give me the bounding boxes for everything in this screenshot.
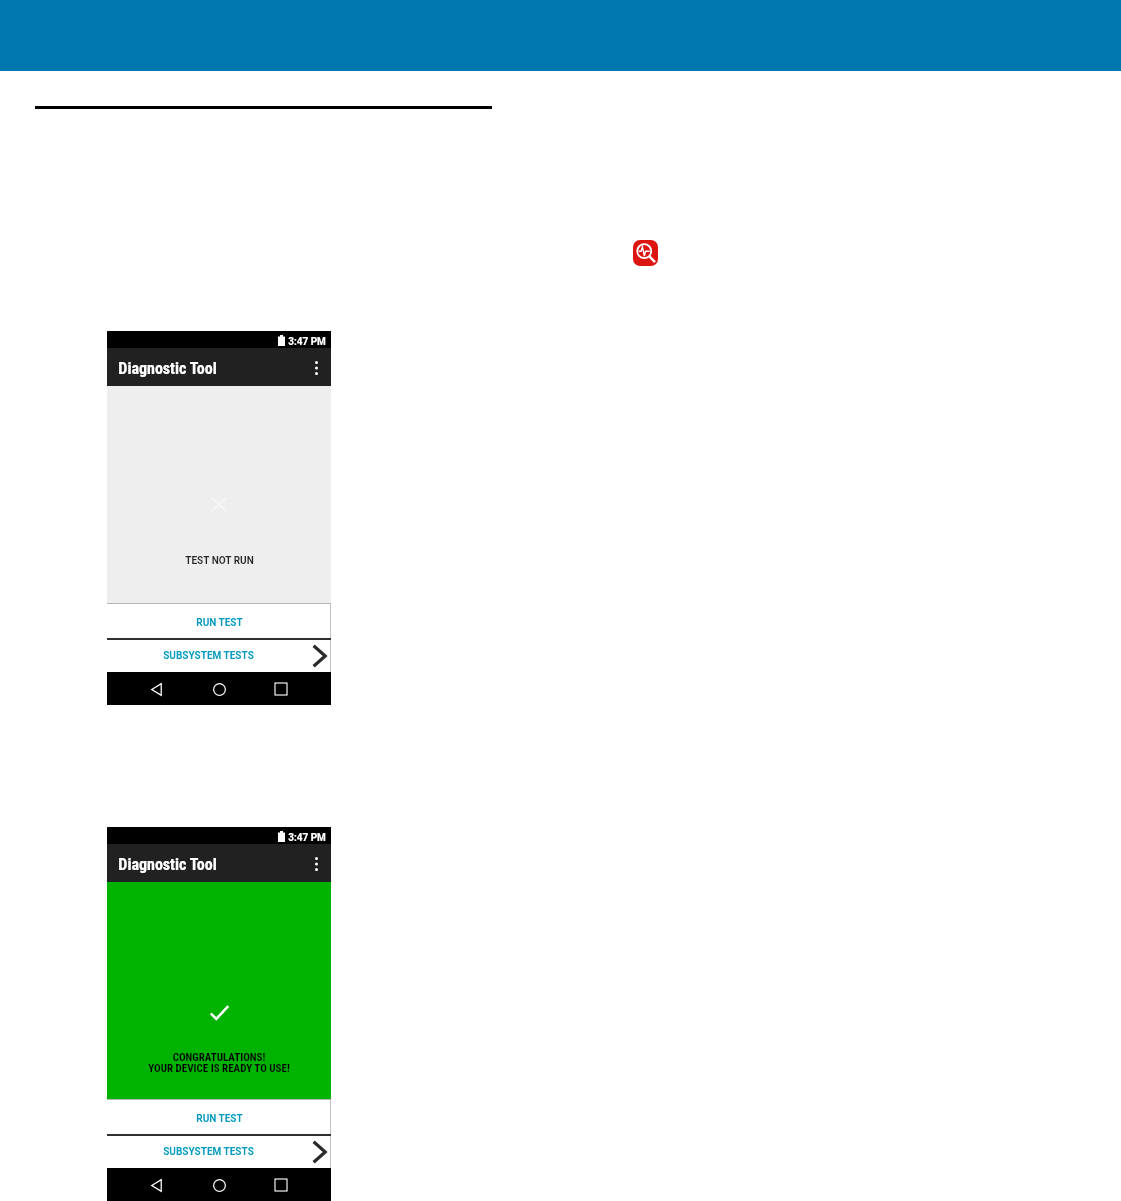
staticText: SUBSYSTEM TESTS <box>163 1146 254 1158</box>
button[interactable]: Recents <box>266 1168 296 1201</box>
button[interactable]: SUBSYSTEM TESTS <box>107 1136 331 1168</box>
staticText: SUBSYSTEM TESTS <box>163 650 254 662</box>
button[interactable]: Recents <box>266 672 296 705</box>
staticText: RUN TEST <box>196 1113 243 1125</box>
staticText: 3:47 PM <box>288 832 326 844</box>
staticText: RUN TEST <box>196 617 243 629</box>
button[interactable]: Back <box>141 672 171 705</box>
button[interactable]: Back <box>141 1168 171 1201</box>
button[interactable]: Diagnostic Tool app icon <box>633 240 658 266</box>
staticText: 3:47 PM <box>288 336 326 348</box>
button[interactable]: SUBSYSTEM TESTS <box>107 640 331 672</box>
button[interactable]: RUN TEST <box>107 604 331 638</box>
staticText: TEST NOT RUN <box>185 555 254 567</box>
staticText: CONGRATULATIONS! YOUR DEVICE IS READY TO… <box>148 1051 290 1074</box>
button[interactable]: More options <box>301 844 331 882</box>
staticText: Diagnostic Tool <box>118 855 217 874</box>
button[interactable]: RUN TEST <box>107 1100 331 1134</box>
button[interactable]: Home <box>204 672 234 705</box>
button[interactable]: Home <box>204 1168 234 1201</box>
button[interactable]: More options <box>301 348 331 386</box>
staticText: Diagnostic Tool <box>118 359 217 378</box>
